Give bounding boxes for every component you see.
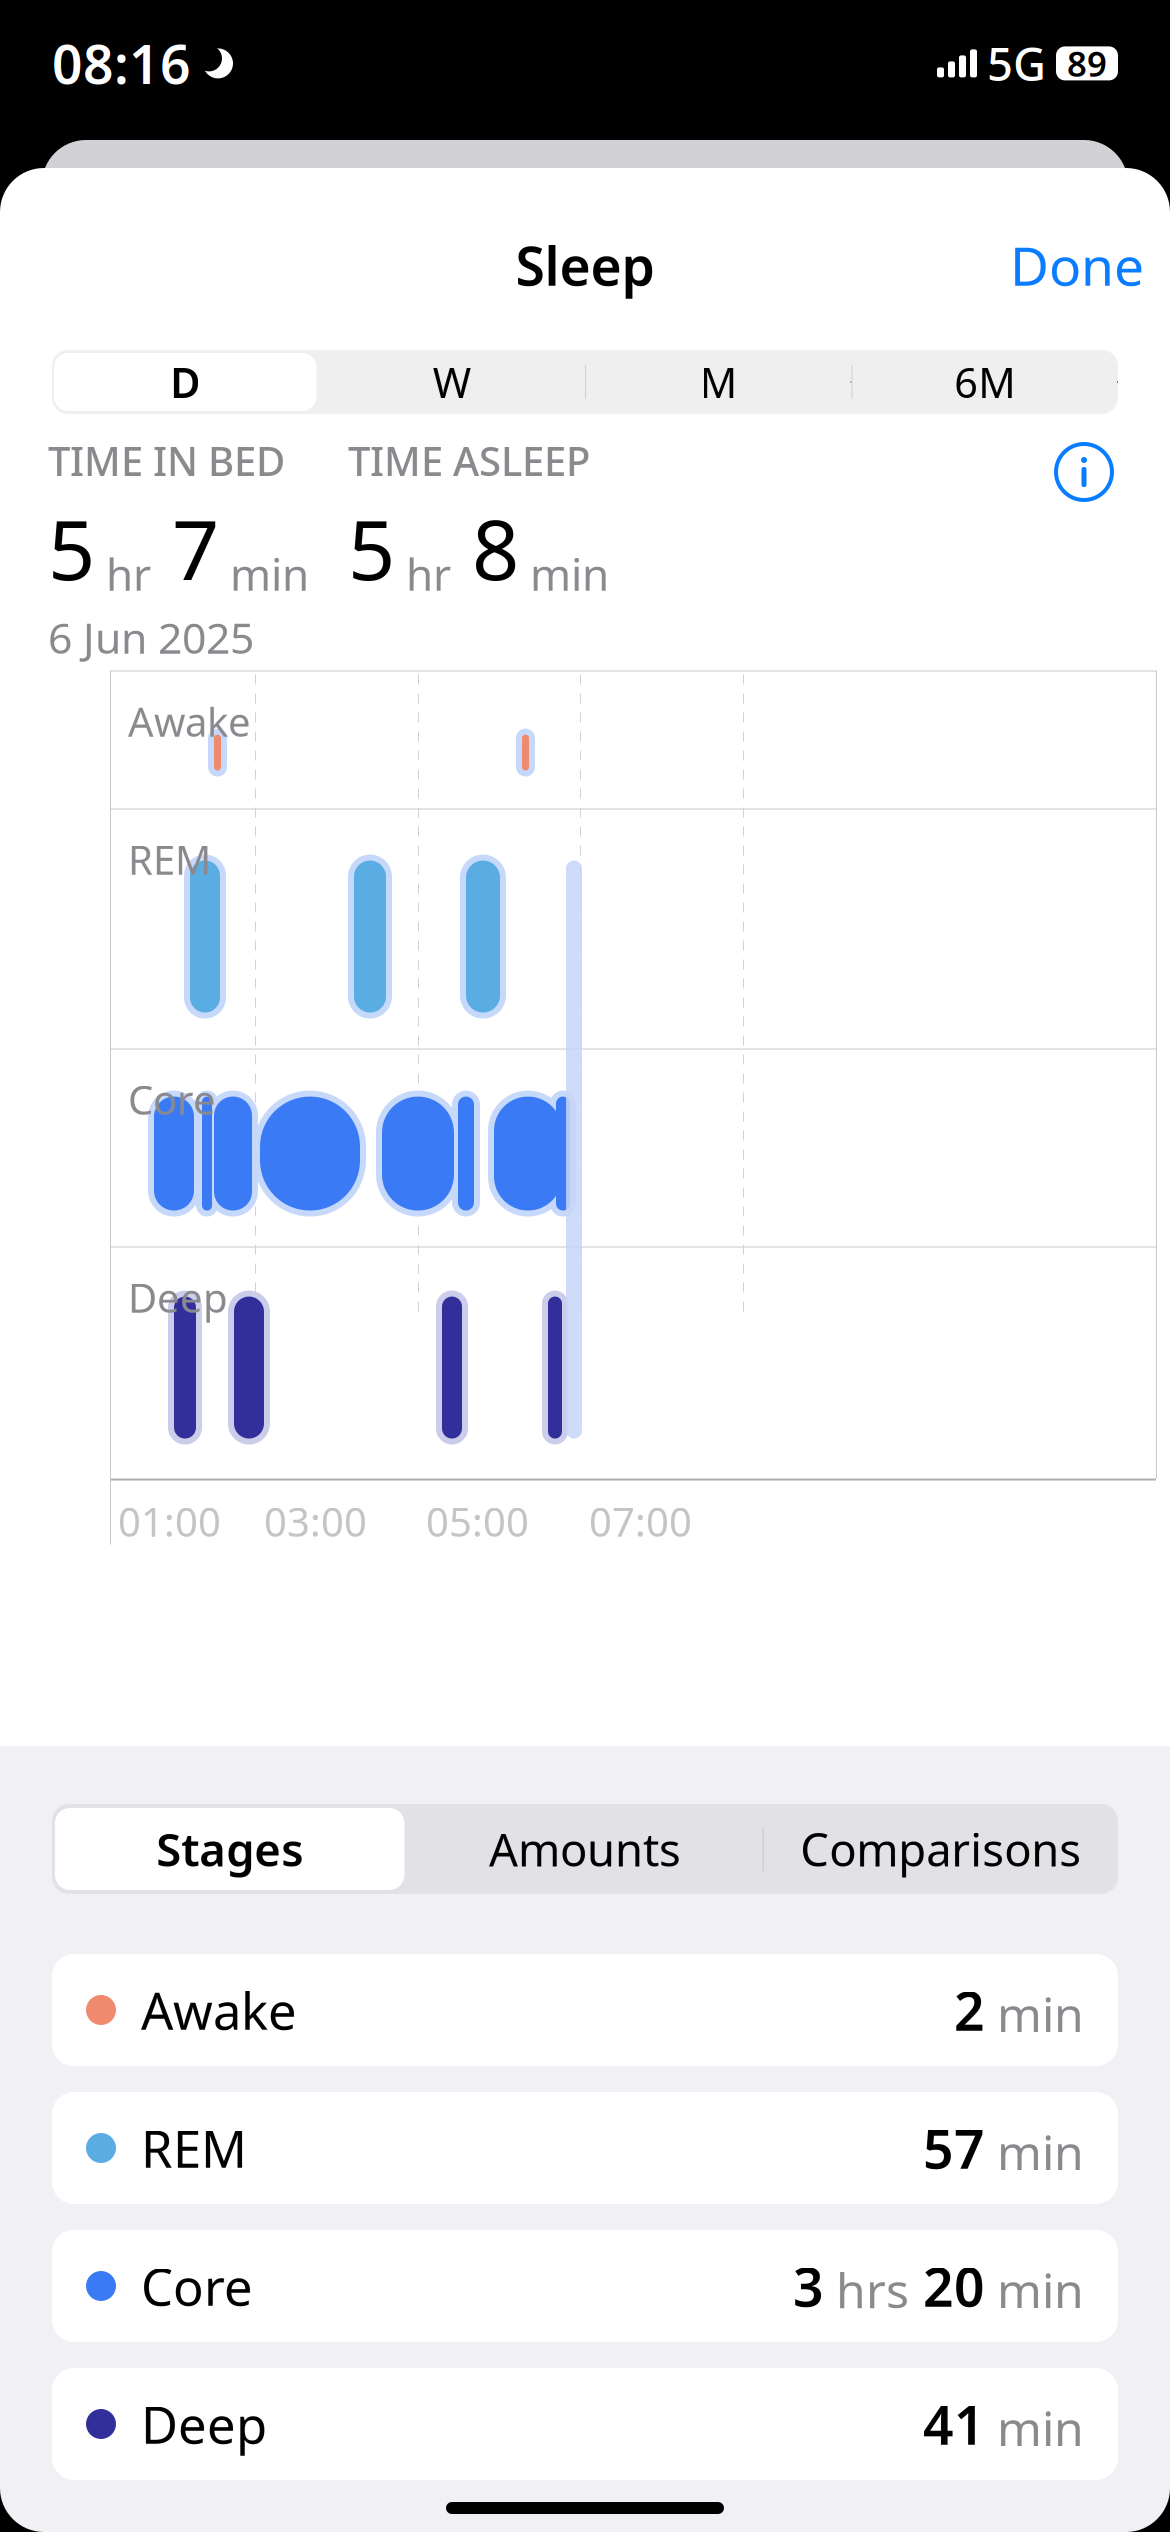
staticText: hr — [95, 544, 151, 603]
staticText: 3 — [793, 2251, 824, 2321]
staticText: Comparisons — [800, 1819, 1081, 1879]
staticText: Core — [128, 2252, 253, 2320]
button[interactable]: W — [318, 350, 585, 414]
staticText: 8 — [451, 493, 519, 603]
staticText: Done — [1010, 230, 1144, 300]
staticText: REM — [128, 833, 211, 886]
staticText: Awake — [128, 1976, 297, 2044]
staticText: 01:00 — [118, 1495, 221, 1548]
staticText: Deep — [128, 1271, 228, 1324]
staticText: 05:00 — [426, 1495, 529, 1548]
staticText: 07:00 — [589, 1495, 692, 1548]
button[interactable]: D — [52, 350, 318, 414]
staticText: Sleep — [515, 230, 654, 300]
staticText: Deep — [128, 2390, 267, 2458]
staticText: 5 — [48, 493, 95, 603]
staticText: 6 Jun 2025 — [48, 609, 254, 666]
staticText: 7 — [151, 493, 219, 603]
staticText: REM — [128, 2114, 247, 2182]
button[interactable]: Core — [52, 2230, 1118, 2342]
staticText: 6M — [954, 355, 1015, 409]
button[interactable]: Awake — [52, 1954, 1118, 2066]
staticText: hr — [395, 544, 451, 603]
staticText: D — [170, 355, 200, 409]
staticText: 03:00 — [264, 1495, 367, 1548]
staticText: hrs — [824, 2258, 909, 2321]
staticText: min — [985, 2396, 1084, 2459]
staticText: Awake — [128, 695, 251, 748]
staticText: 57 — [923, 2113, 985, 2183]
staticText: TIME ASLEEP — [348, 434, 590, 487]
staticText: 20 — [909, 2251, 985, 2321]
staticText: 89 — [1067, 40, 1107, 86]
button[interactable]: Amounts — [407, 1804, 763, 1894]
staticText: Amounts — [489, 1819, 681, 1879]
staticText: Stages — [156, 1819, 303, 1879]
button[interactable]: Deep — [52, 2368, 1118, 2480]
button[interactable]: About sleep stages — [1046, 434, 1122, 510]
staticText: min — [985, 2120, 1084, 2183]
staticText: 41 — [923, 2389, 985, 2459]
staticText: min — [985, 1982, 1084, 2045]
staticText: 08:16 — [52, 28, 191, 99]
staticText: 5G — [987, 33, 1046, 93]
staticText: min — [219, 544, 309, 603]
staticText: TIME IN BED — [48, 434, 285, 487]
staticText: 5 — [348, 493, 395, 603]
button[interactable]: Done — [984, 218, 1170, 312]
button[interactable]: Stages — [52, 1804, 407, 1894]
button[interactable]: REM — [52, 2092, 1118, 2204]
staticText: min — [519, 544, 609, 603]
button[interactable]: 6M — [851, 350, 1118, 414]
staticText: min — [985, 2258, 1084, 2321]
button[interactable]: Comparisons — [763, 1804, 1118, 1894]
staticText: Core — [128, 1073, 216, 1126]
staticText: 2 — [954, 1975, 985, 2045]
staticText: W — [433, 355, 471, 409]
staticText: M — [700, 355, 737, 409]
button[interactable]: M — [585, 350, 851, 414]
